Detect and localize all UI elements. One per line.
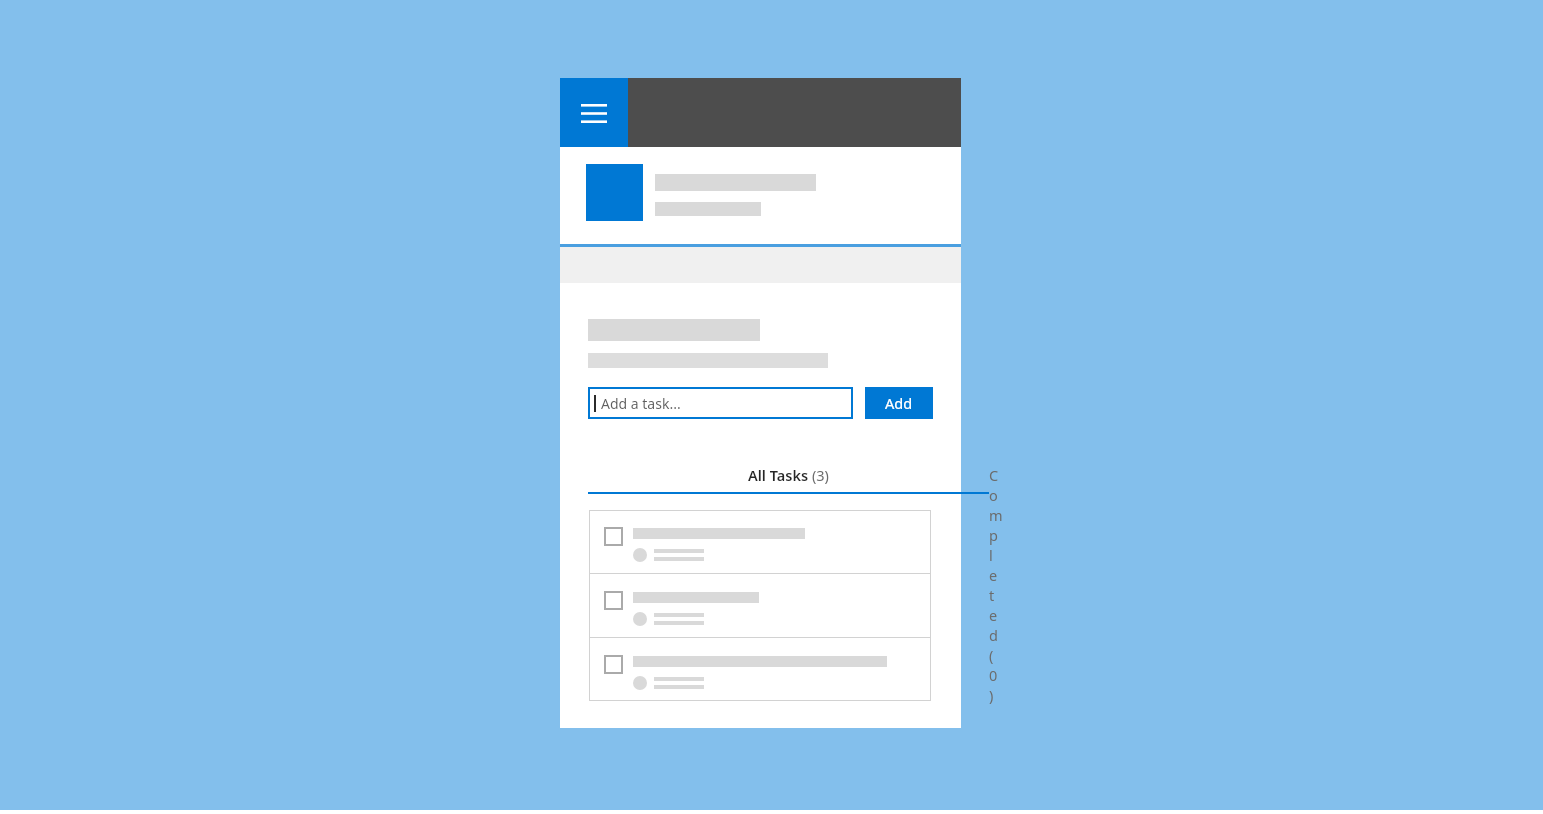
button[interactable]: Toggle task complete <box>589 510 931 574</box>
button[interactable]: Toggle task complete <box>589 638 931 701</box>
staticText: All Tasks (3) <box>748 465 829 485</box>
button[interactable]: Toggle task complete <box>604 591 623 610</box>
button[interactable]: Toggle task complete <box>604 655 623 674</box>
staticText: Add <box>885 393 913 413</box>
button[interactable]: Menu <box>560 78 628 147</box>
staticText: Add a task... <box>601 394 681 413</box>
button[interactable]: Add a task text field <box>588 387 853 419</box>
button[interactable]: All Tasks (3) <box>588 465 989 494</box>
button[interactable]: Toggle task complete <box>589 574 931 638</box>
button[interactable]: Add <box>865 387 933 419</box>
button[interactable]: Toggle task complete <box>604 527 623 546</box>
